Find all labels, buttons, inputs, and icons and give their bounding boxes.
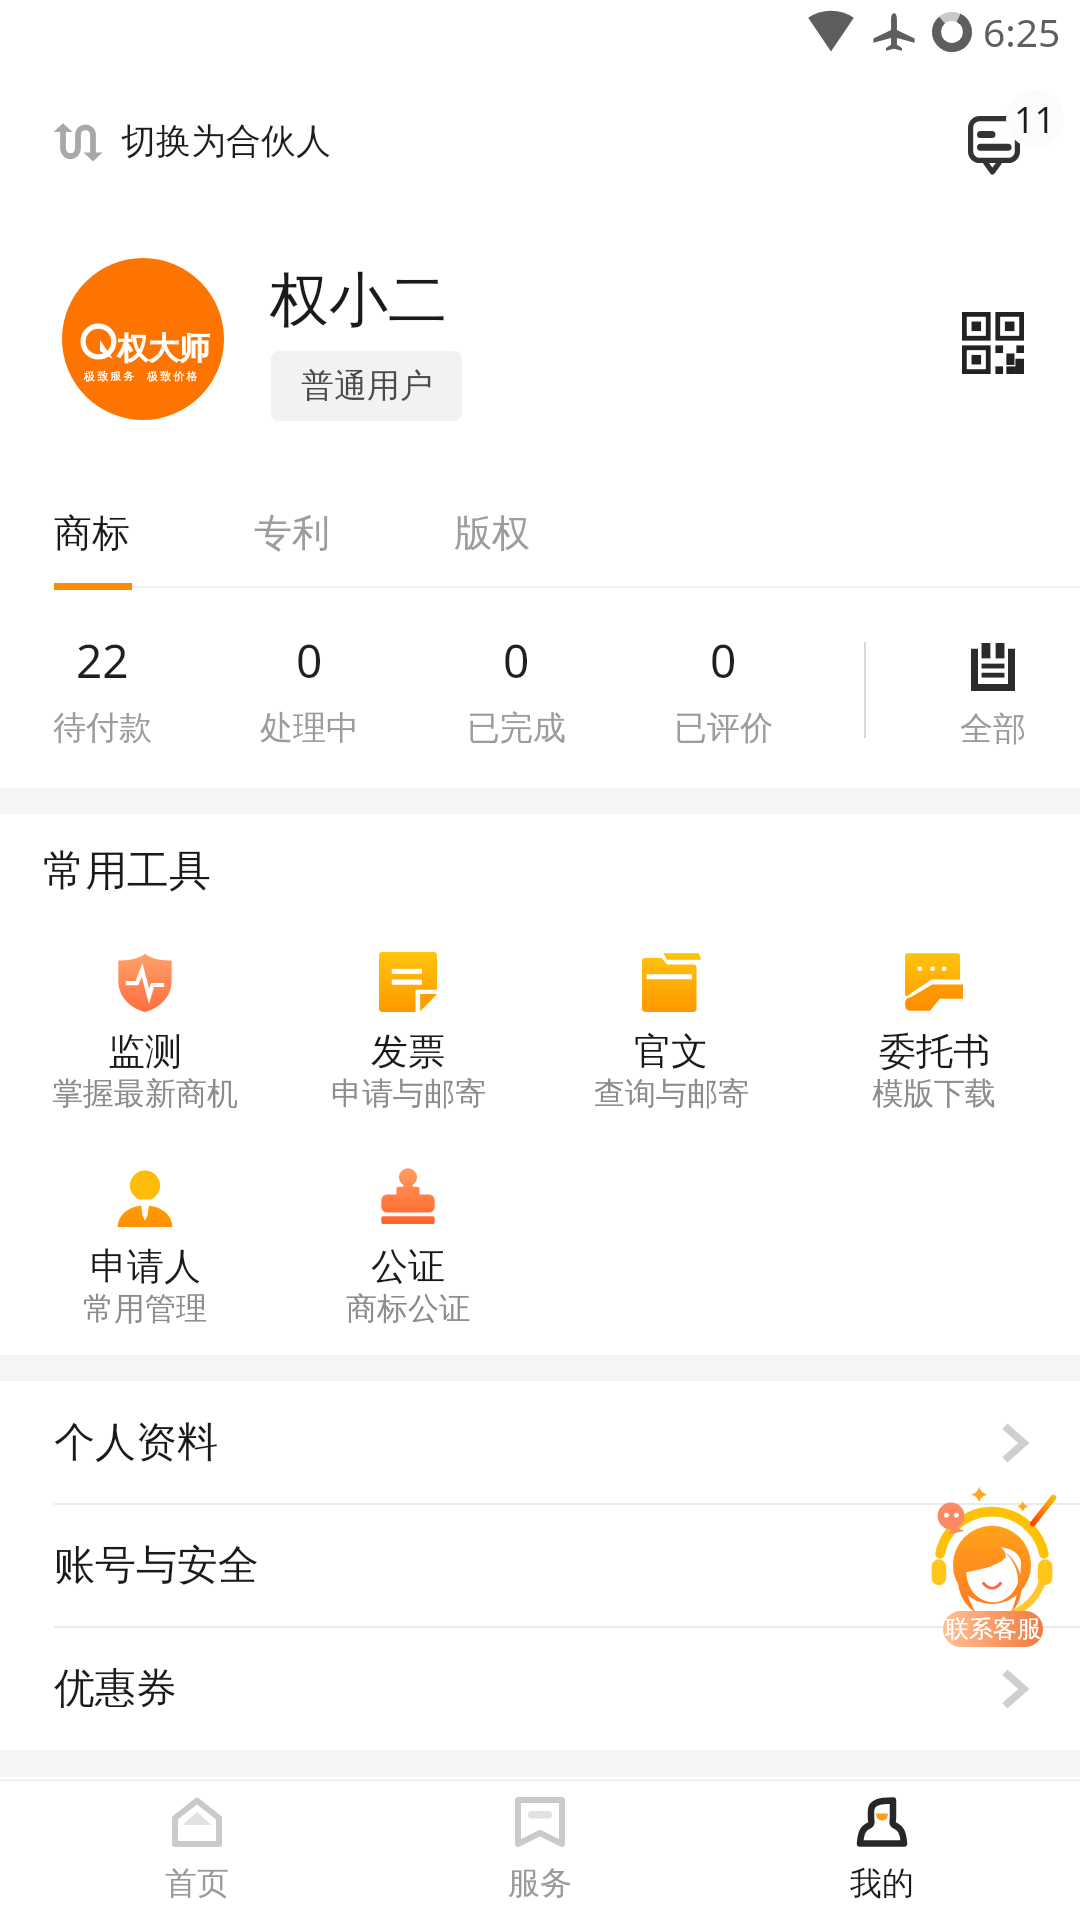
staticText: 申请人: [90, 1243, 201, 1290]
staticText: 专利: [254, 509, 330, 557]
button[interactable]: 22: [2, 629, 202, 749]
button[interactable]: 优惠券: [0, 1627, 1080, 1750]
button[interactable]: 服务: [400, 1797, 680, 1903]
button[interactable]: 0: [416, 629, 616, 749]
button[interactable]: 官文: [540, 952, 802, 1114]
staticText: 22: [76, 629, 129, 692]
button[interactable]: 委托书: [803, 952, 1065, 1114]
staticText: 已完成: [467, 707, 566, 749]
staticText: 个人资料: [54, 1417, 218, 1469]
button[interactable]: 普通用户: [271, 351, 462, 421]
staticText: 已评价: [674, 707, 773, 749]
button[interactable]: Messages: [960, 90, 1064, 182]
button[interactable]: 我的: [742, 1797, 1022, 1903]
staticText: 商标公证: [346, 1289, 470, 1328]
staticText: 11: [1014, 95, 1056, 144]
staticText: 商标: [54, 509, 130, 557]
staticText: 处理中: [260, 707, 359, 749]
staticText: 权大师: [117, 329, 210, 368]
staticText: 普通用户: [301, 365, 433, 407]
staticText: 模版下载: [872, 1074, 996, 1113]
staticText: 版权: [454, 509, 530, 557]
button[interactable]: 全部: [905, 643, 1080, 750]
staticText: 极致服务 极致价格: [84, 368, 200, 383]
button[interactable]: 账号与安全: [0, 1504, 1080, 1627]
staticText: 委托书: [879, 1028, 990, 1075]
staticText: 待付款: [53, 707, 152, 749]
button[interactable]: 专利: [236, 495, 348, 571]
staticText: 申请与邮寄: [331, 1074, 486, 1113]
staticText: 公证: [371, 1243, 445, 1290]
staticText: 掌握最新商机: [52, 1074, 238, 1113]
staticText: 0: [710, 629, 737, 692]
staticText: 查询与邮寄: [594, 1074, 749, 1113]
button[interactable]: Scan QR code: [950, 300, 1035, 385]
button[interactable]: 切换为合伙人: [43, 102, 347, 182]
button[interactable]: 版权: [436, 495, 548, 571]
staticText: 监测: [108, 1028, 182, 1075]
staticText: 优惠券: [54, 1663, 177, 1715]
button[interactable]: 0: [623, 629, 823, 749]
staticText: 切换为合伙人: [121, 119, 331, 163]
staticText: 全部: [960, 708, 1026, 750]
staticText: 0: [503, 629, 530, 692]
staticText: 首页: [165, 1863, 229, 1903]
staticText: 0: [296, 629, 323, 692]
staticText: 服务: [508, 1863, 572, 1903]
staticText: 发票: [371, 1028, 445, 1075]
button[interactable]: 监测: [14, 952, 276, 1114]
button[interactable]: Avatar: [62, 258, 224, 420]
button[interactable]: 0: [209, 629, 409, 749]
staticText: 我的: [850, 1863, 914, 1903]
staticText: 账号与安全: [54, 1540, 259, 1592]
staticText: 权小二: [270, 263, 447, 337]
button[interactable]: 个人资料: [0, 1381, 1080, 1504]
button[interactable]: 公证: [277, 1167, 539, 1329]
staticText: 常用管理: [83, 1289, 207, 1328]
button[interactable]: 发票: [277, 952, 539, 1114]
staticText: 常用工具: [43, 845, 211, 898]
staticText: 6:25: [983, 5, 1061, 58]
button[interactable]: 首页: [57, 1797, 337, 1903]
button[interactable]: 申请人: [14, 1167, 276, 1329]
button[interactable]: 商标: [36, 495, 148, 571]
staticText: 联系客服: [945, 1614, 1041, 1644]
button[interactable]: Contact support: [928, 1482, 1056, 1650]
staticText: 官文: [634, 1028, 708, 1075]
